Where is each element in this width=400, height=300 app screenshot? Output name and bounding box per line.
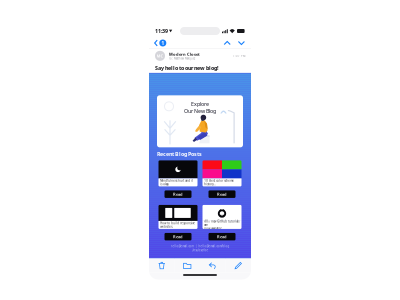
button[interactable]: Read (208, 190, 235, 198)
button[interactable]: Back to Inbox (149, 37, 171, 48)
button[interactable]: Delete (149, 258, 174, 272)
button[interactable]: Reply (200, 258, 225, 272)
button[interactable]: Move to folder (174, 258, 200, 272)
button[interactable]: Next message (234, 37, 251, 48)
button[interactable]: Read (164, 190, 191, 198)
staticText: 11:39 (155, 27, 168, 35)
button[interactable]: Compose (225, 258, 251, 272)
staticText: Say hello to our new blog! (155, 64, 219, 71)
staticText: Read (217, 234, 227, 239)
staticText: Read (173, 191, 183, 197)
staticText: Our New Blog (184, 107, 216, 114)
staticText: hello@email.com | hello@email.com/blog (170, 244, 229, 248)
staticText: Read (173, 234, 183, 239)
staticText: To: Matthew Marquez (169, 57, 195, 60)
staticText: Mindfulness hurt and it is okay. (160, 179, 193, 186)
staticText: Read (217, 191, 227, 197)
staticText: MC (156, 53, 163, 58)
staticText: How to build responsive websites. (160, 221, 195, 228)
staticText: Explore (191, 100, 209, 107)
button[interactable]: Read (164, 233, 191, 240)
staticText: 1 (161, 39, 164, 47)
button[interactable]: Read (208, 233, 235, 240)
staticText: 1:07 PM (233, 54, 245, 58)
staticText: 40+ new GitHub tutorials are now availab… (204, 220, 239, 230)
staticText: 10 Best color scheme history... (204, 179, 234, 186)
staticText: Recent Blog Posts (157, 150, 202, 157)
button[interactable]: Previous message (220, 37, 234, 48)
staticText: Modern Closet (169, 51, 200, 57)
staticText: Unsubscribe (191, 248, 208, 252)
